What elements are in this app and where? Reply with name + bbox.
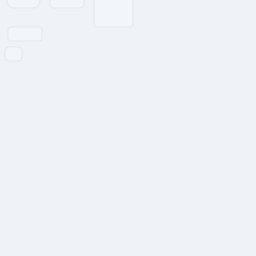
button[interactable]: Row	[8, 27, 42, 41]
button[interactable]: Action	[5, 47, 22, 61]
button[interactable]: Menu	[50, 0, 84, 8]
button[interactable]: Back	[7, 0, 40, 8]
